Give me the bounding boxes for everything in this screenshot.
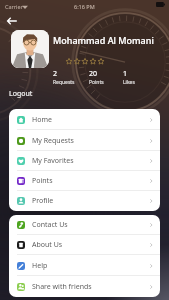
button[interactable]: About Us <box>9 235 160 255</box>
staticText: My Requests <box>32 136 74 146</box>
button[interactable]: My Requests <box>9 130 160 151</box>
staticText: Carrier <box>5 3 23 10</box>
staticText: Logout <box>9 89 33 99</box>
staticText: Likes <box>123 79 135 86</box>
staticText: Points <box>32 176 53 186</box>
staticText: 2 <box>53 69 58 79</box>
button[interactable]: Share with friends <box>9 276 160 297</box>
staticText: Share with friends <box>32 282 92 292</box>
staticText: Mohammad Al Momani <box>53 34 154 46</box>
button[interactable]: Profile <box>9 191 160 211</box>
staticText: About Us <box>32 240 63 250</box>
staticText: Help <box>32 261 48 271</box>
button[interactable]: 1 <box>123 69 135 86</box>
staticText: 6:16 PM <box>74 3 95 10</box>
staticText: Contact Us <box>32 220 68 230</box>
button[interactable]: Home <box>9 109 160 130</box>
staticText: Home <box>32 115 52 125</box>
button[interactable]: 20 <box>89 69 104 86</box>
staticText: Points <box>89 79 104 86</box>
button[interactable]: Contact Us <box>9 215 160 235</box>
staticText: My Favorites <box>32 156 74 166</box>
staticText: 1 <box>123 69 128 79</box>
button[interactable]: Logout <box>9 89 33 99</box>
button[interactable]: Back <box>4 13 20 29</box>
button[interactable]: Rating <box>65 57 105 66</box>
button[interactable]: Profile photo <box>11 30 49 68</box>
staticText: 20 <box>89 69 98 79</box>
button[interactable]: Help <box>9 255 160 276</box>
other: Battery <box>156 2 165 7</box>
staticText: Requests <box>53 79 75 86</box>
button[interactable]: My Favorites <box>9 151 160 171</box>
button[interactable]: Points <box>9 171 160 191</box>
button[interactable]: 2 <box>53 69 75 86</box>
staticText: Profile <box>32 196 54 206</box>
